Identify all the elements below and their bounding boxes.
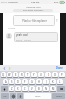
button[interactable]: Previous field <box>2 65 7 71</box>
staticText: post better message... <box>23 9 44 12</box>
button[interactable]: Z <box>9 86 14 92</box>
button[interactable]: D <box>15 79 21 85</box>
button[interactable]: key <box>1 86 8 92</box>
button[interactable]: Plad u r file explorer <box>13 15 55 26</box>
staticText: return <box>56 95 62 98</box>
button[interactable]: key <box>57 86 65 92</box>
button[interactable]: T <box>25 72 30 78</box>
staticText: S <box>11 80 13 84</box>
button[interactable]: U <box>38 72 44 78</box>
staticText: H <box>38 80 40 84</box>
staticText: W <box>8 73 11 77</box>
staticText: C <box>24 87 26 91</box>
staticText: Z <box>11 87 13 91</box>
staticText: 7:45 PM <box>31 1 40 4</box>
staticText: ootprep.com <box>26 5 41 8</box>
staticText: B <box>38 87 40 91</box>
button[interactable]: P <box>59 72 65 78</box>
staticText: M <box>52 87 55 91</box>
staticText: X <box>17 87 19 91</box>
button[interactable]: X <box>15 86 21 92</box>
staticText: O <box>54 73 57 77</box>
button[interactable]: H <box>36 79 42 85</box>
staticText: A <box>5 80 7 84</box>
staticText: 7:43 PM <box>8 27 16 30</box>
button[interactable]: R <box>19 72 24 78</box>
staticText: K <box>52 80 54 84</box>
button[interactable]: A <box>3 79 8 85</box>
button[interactable]: C <box>22 86 28 92</box>
button[interactable]: E <box>13 72 18 78</box>
button[interactable]: 123 <box>1 93 9 99</box>
button[interactable]: J <box>43 79 49 85</box>
staticText: L <box>59 80 61 84</box>
staticText: 83% <box>54 1 59 4</box>
button[interactable]: Y <box>31 72 37 78</box>
button[interactable]: yeah cool <box>14 32 58 42</box>
button[interactable]: O <box>52 72 58 78</box>
button[interactable]: V <box>29 86 35 92</box>
staticText: G <box>31 80 33 84</box>
other: Contact avatar <box>6 33 12 39</box>
staticText: Don't it 5:48 PM <box>16 39 31 41</box>
staticText: 123 <box>3 95 7 98</box>
button[interactable]: L <box>57 79 63 85</box>
button[interactable]: I <box>45 72 51 78</box>
button[interactable]: space <box>24 93 51 99</box>
staticText: V <box>31 87 33 91</box>
staticText: J <box>46 80 47 84</box>
staticText: U <box>40 73 42 77</box>
staticText: D <box>17 80 19 84</box>
staticText: space <box>35 95 41 98</box>
button[interactable]: Done <box>56 65 63 71</box>
staticText: N <box>45 87 47 91</box>
staticText: ? <box>56 19 58 23</box>
button[interactable]: N <box>43 86 49 92</box>
staticText: Y <box>33 73 35 77</box>
staticText: Q <box>2 73 5 77</box>
button[interactable]: G <box>29 79 35 85</box>
button[interactable]: key <box>10 93 16 99</box>
button[interactable]: M <box>50 86 56 92</box>
staticText: Plad u r file explorer <box>22 19 47 23</box>
button[interactable]: K <box>50 79 56 85</box>
staticText: R <box>21 73 23 77</box>
staticText: F <box>24 80 26 84</box>
staticText: T <box>27 73 29 77</box>
button[interactable]: W <box>7 72 12 78</box>
staticText: yeah cool <box>16 33 28 37</box>
button[interactable]: S <box>9 79 14 85</box>
staticText: P <box>61 73 63 77</box>
button[interactable]: F <box>22 79 28 85</box>
staticText: I <box>48 73 49 77</box>
button[interactable]: B <box>36 86 42 92</box>
staticText: Done <box>56 66 63 70</box>
button[interactable]: Q <box>1 72 6 78</box>
button[interactable]: return <box>52 93 65 99</box>
button[interactable]: post better message... <box>13 9 53 12</box>
staticText: Vodafone <box>8 1 18 4</box>
staticText: E <box>15 73 17 77</box>
button[interactable]: Next field <box>7 65 12 71</box>
button[interactable]: key <box>17 93 23 99</box>
